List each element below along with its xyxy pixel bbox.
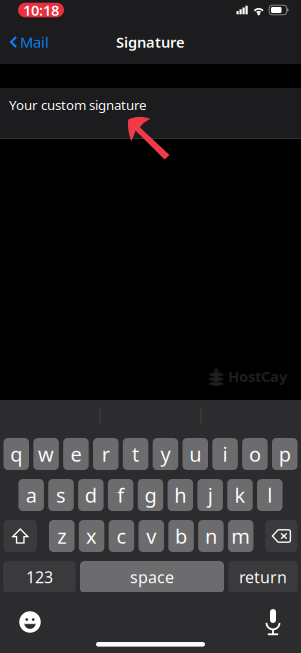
button[interactable]: f bbox=[108, 479, 133, 511]
staticText: z bbox=[57, 523, 66, 549]
button[interactable]: c bbox=[109, 520, 134, 552]
staticText: HostCay bbox=[228, 366, 287, 386]
staticText: j bbox=[208, 482, 213, 508]
button[interactable]: space bbox=[80, 561, 224, 593]
staticText: x bbox=[86, 523, 97, 549]
staticText: u bbox=[189, 441, 201, 467]
button[interactable]: e bbox=[63, 438, 89, 470]
button[interactable]: z bbox=[49, 520, 74, 552]
staticText: Mail bbox=[20, 32, 49, 52]
button[interactable]: u bbox=[182, 438, 208, 470]
staticText: return bbox=[239, 566, 287, 588]
button[interactable]: q bbox=[3, 438, 29, 470]
staticText: p bbox=[279, 441, 291, 467]
button[interactable]: w bbox=[33, 438, 59, 470]
button[interactable]: return bbox=[228, 561, 298, 593]
staticText: h bbox=[174, 482, 186, 508]
staticText: c bbox=[116, 523, 126, 549]
staticText: d bbox=[85, 482, 97, 508]
staticText: space bbox=[130, 566, 174, 588]
button[interactable]: Shift bbox=[3, 520, 37, 552]
staticText: a bbox=[26, 482, 37, 508]
staticText: k bbox=[234, 482, 245, 508]
button[interactable]: x bbox=[79, 520, 104, 552]
staticText: m bbox=[231, 523, 250, 549]
staticText: Signature bbox=[116, 32, 185, 52]
staticText: y bbox=[160, 441, 170, 467]
button[interactable]: y bbox=[153, 438, 178, 470]
staticText: b bbox=[175, 523, 187, 549]
button[interactable]: v bbox=[138, 520, 164, 552]
button[interactable]: Mail bbox=[0, 26, 49, 58]
button[interactable]: a bbox=[18, 479, 44, 511]
button[interactable]: h bbox=[168, 479, 193, 511]
staticText: w bbox=[38, 441, 54, 467]
button[interactable]: m bbox=[228, 520, 253, 552]
staticText: l bbox=[267, 482, 272, 508]
button[interactable]: d bbox=[78, 479, 104, 511]
button[interactable]: Emoji bbox=[10, 602, 50, 642]
staticText: 123 bbox=[26, 566, 53, 588]
staticText: i bbox=[223, 441, 228, 467]
button[interactable]: Dictate bbox=[253, 602, 293, 642]
staticText: g bbox=[144, 482, 156, 508]
button[interactable]: g bbox=[138, 479, 163, 511]
staticText: s bbox=[56, 482, 66, 508]
staticText: n bbox=[205, 523, 217, 549]
staticText: t bbox=[132, 441, 139, 467]
staticText: v bbox=[146, 523, 156, 549]
staticText: r bbox=[102, 441, 110, 467]
button[interactable]: p bbox=[272, 438, 297, 470]
button[interactable]: i bbox=[212, 438, 238, 470]
staticText: q bbox=[10, 441, 22, 467]
button[interactable]: k bbox=[227, 479, 253, 511]
staticText: Your custom signature bbox=[9, 96, 147, 114]
staticText: 10:18 bbox=[23, 0, 59, 20]
button[interactable]: j bbox=[197, 479, 223, 511]
button[interactable]: r bbox=[93, 438, 118, 470]
button[interactable]: t bbox=[123, 438, 148, 470]
button[interactable]: b bbox=[168, 520, 194, 552]
staticText: o bbox=[249, 441, 261, 467]
button[interactable]: n bbox=[198, 520, 224, 552]
button[interactable]: 123 bbox=[3, 561, 76, 593]
button[interactable]: Delete bbox=[265, 520, 297, 552]
button[interactable]: s bbox=[48, 479, 74, 511]
button[interactable]: o bbox=[242, 438, 268, 470]
staticText: e bbox=[70, 441, 81, 467]
button[interactable]: l bbox=[257, 479, 283, 511]
staticText: f bbox=[117, 482, 124, 508]
